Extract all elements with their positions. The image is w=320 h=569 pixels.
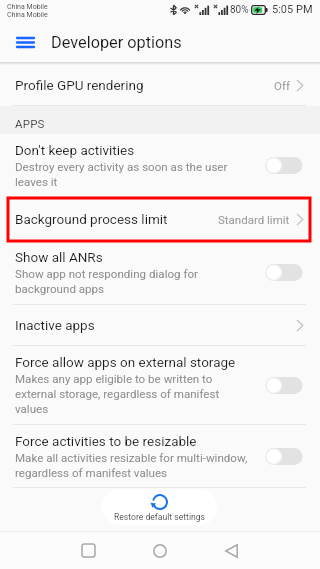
staticText: Background process limit	[15, 211, 218, 227]
staticText: Profile GPU rendering	[15, 77, 274, 93]
button[interactable]: Restore default settings	[102, 489, 217, 525]
button[interactable]: Background process limit	[0, 198, 320, 241]
staticText: 80%	[230, 4, 249, 16]
staticText: APPS	[15, 117, 45, 130]
staticText: China Mobile	[7, 11, 48, 19]
staticText: 5:05 PM	[272, 3, 313, 16]
button[interactable]: Force activities to be resizable	[0, 425, 320, 488]
staticText: Make all activities resizable for multi-…	[15, 451, 249, 480]
button[interactable]: Menu	[0, 22, 50, 62]
staticText: Standard limit	[218, 213, 290, 226]
staticText: Makes any app eligible to be written to …	[15, 372, 249, 416]
button[interactable]: Don't keep activities	[0, 134, 320, 198]
button[interactable]: Show all ANRs	[0, 241, 320, 305]
button[interactable]: Force allow apps on external storage	[0, 346, 320, 425]
staticText: Force allow apps on external storage	[15, 354, 236, 370]
staticText: Off	[274, 79, 290, 92]
staticText: Don't keep activities	[15, 142, 135, 158]
staticText: China Mobile	[7, 3, 48, 11]
staticText: Show app not responding dialog for backg…	[15, 267, 249, 296]
button[interactable]: Inactive apps	[0, 305, 320, 346]
button[interactable]: Back	[213, 532, 250, 569]
staticText: Inactive apps	[15, 317, 296, 333]
staticText: Show all ANRs	[15, 249, 103, 265]
staticText: Force activities to be resizable	[15, 433, 197, 449]
button[interactable]: Home	[141, 532, 178, 569]
staticText: Developer options	[51, 33, 182, 52]
staticText: Destroy every activity as soon as the us…	[15, 160, 249, 189]
button[interactable]: Recents	[70, 532, 107, 569]
staticText: Restore default settings	[114, 512, 205, 522]
button[interactable]: Profile GPU rendering	[0, 65, 320, 106]
